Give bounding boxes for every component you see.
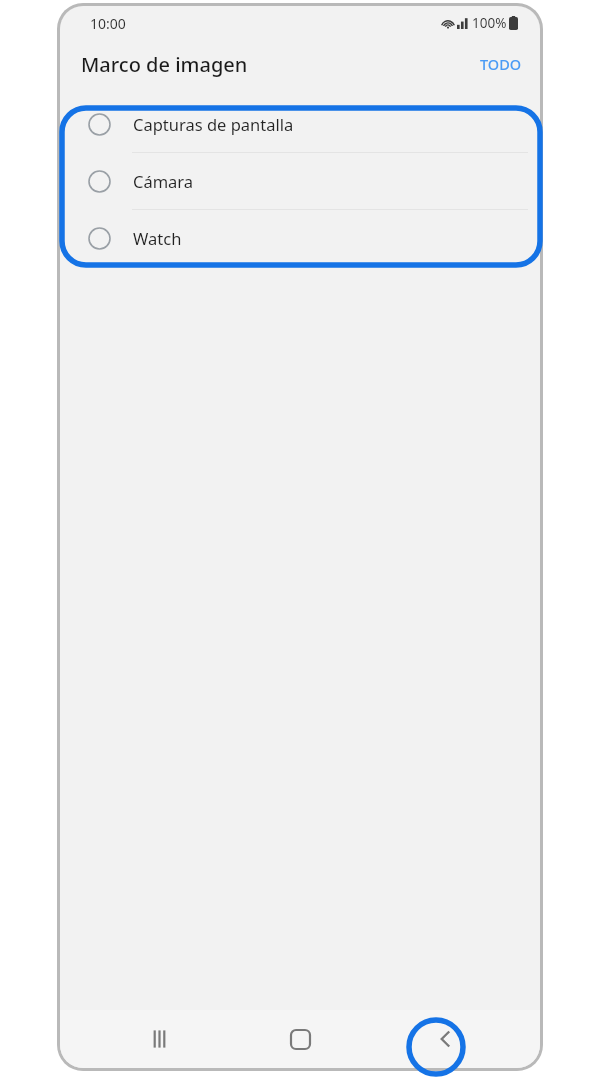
button[interactable]: Cámara: [60, 153, 540, 209]
button[interactable]: Back: [424, 1017, 468, 1061]
button[interactable]: TODO: [462, 46, 540, 82]
staticText: Cámara: [133, 170, 194, 192]
button[interactable]: Capturas de pantalla: [60, 96, 540, 152]
staticText: Watch: [133, 227, 182, 249]
button[interactable]: Home: [278, 1017, 322, 1061]
staticText: TODO: [480, 54, 522, 74]
staticText: 100%: [472, 14, 507, 32]
button[interactable]: Watch: [60, 210, 540, 266]
staticText: Marco de imagen: [81, 51, 248, 78]
button[interactable]: Recents: [138, 1017, 182, 1061]
staticText: Capturas de pantalla: [133, 113, 294, 135]
staticText: 10:00: [90, 14, 126, 33]
